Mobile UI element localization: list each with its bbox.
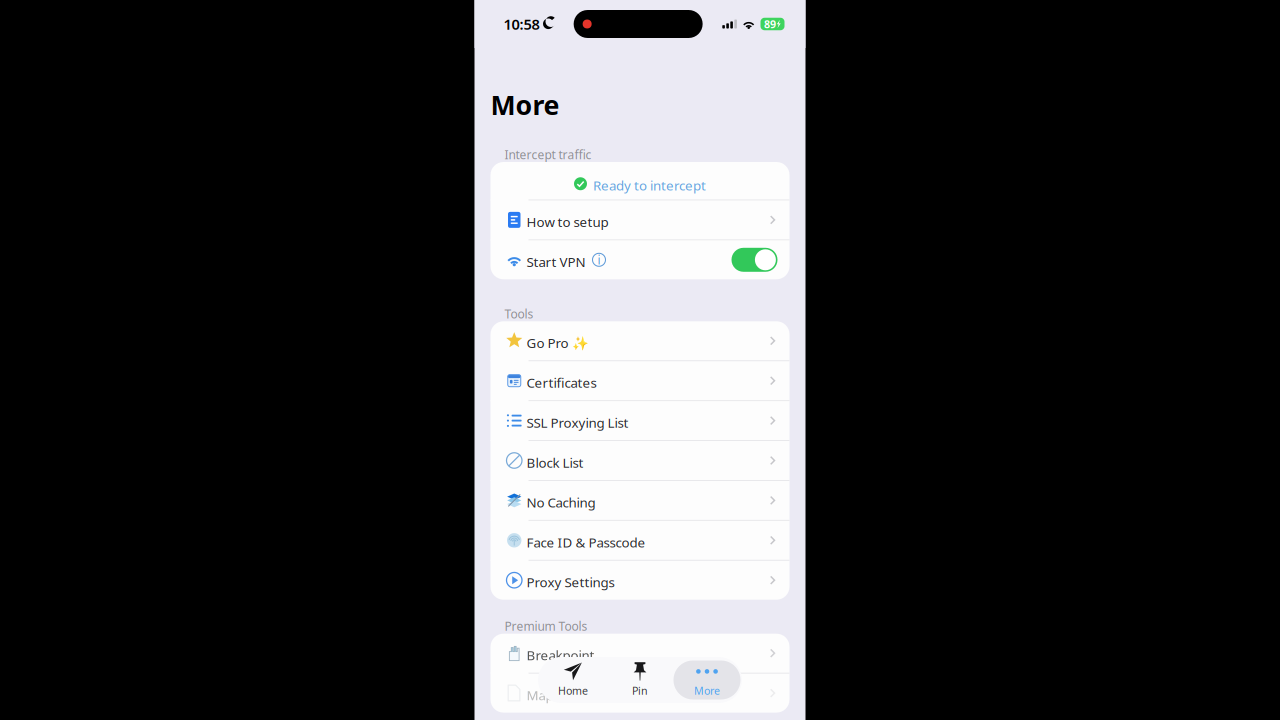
button[interactable]: Pin (606, 660, 673, 699)
button[interactable]: Certificates (490, 361, 789, 400)
button[interactable]: Breakpoint (490, 634, 789, 673)
staticText: Block List (526, 454, 583, 471)
button[interactable]: SSL Proxying List (490, 401, 789, 440)
button[interactable]: Face ID & Passcode (490, 521, 789, 560)
button[interactable]: Block List (490, 441, 789, 480)
staticText: i (597, 252, 600, 268)
button[interactable]: Map (490, 674, 789, 713)
staticText: Start VPN (526, 253, 585, 271)
button[interactable]: Home (539, 660, 606, 699)
staticText: More (694, 684, 720, 698)
button[interactable]: Ready to intercept (490, 162, 789, 199)
button[interactable]: Proxy Settings (490, 561, 789, 600)
staticText: Home (558, 684, 588, 698)
staticText: No Caching (526, 493, 595, 511)
staticText: Ready to intercept (593, 176, 706, 194)
staticText: Proxy Settings (526, 573, 614, 591)
button[interactable]: How to setup (490, 200, 789, 239)
staticText: How to setup (526, 213, 608, 231)
staticText: Certificates (526, 374, 596, 391)
staticText: Face ID & Passcode (526, 533, 645, 551)
button[interactable]: More (673, 660, 740, 699)
staticText: 10:58 (503, 14, 539, 34)
staticText: More (490, 87, 559, 122)
staticText: Pin (632, 684, 648, 698)
staticText: Tools (504, 306, 533, 322)
button[interactable]: No Caching (490, 481, 789, 520)
button[interactable]: Go Pro ✨ (490, 321, 789, 360)
staticText: Premium Tools (504, 618, 587, 634)
staticText: Map (526, 686, 553, 704)
button[interactable]: Start VPN (490, 240, 789, 279)
staticText: SSL Proxying List (526, 414, 628, 431)
staticText: Breakpoint (526, 646, 594, 664)
staticText: 89 (764, 17, 776, 31)
staticText: Go Pro ✨ (526, 334, 588, 352)
staticText: Intercept traffic (504, 146, 591, 162)
